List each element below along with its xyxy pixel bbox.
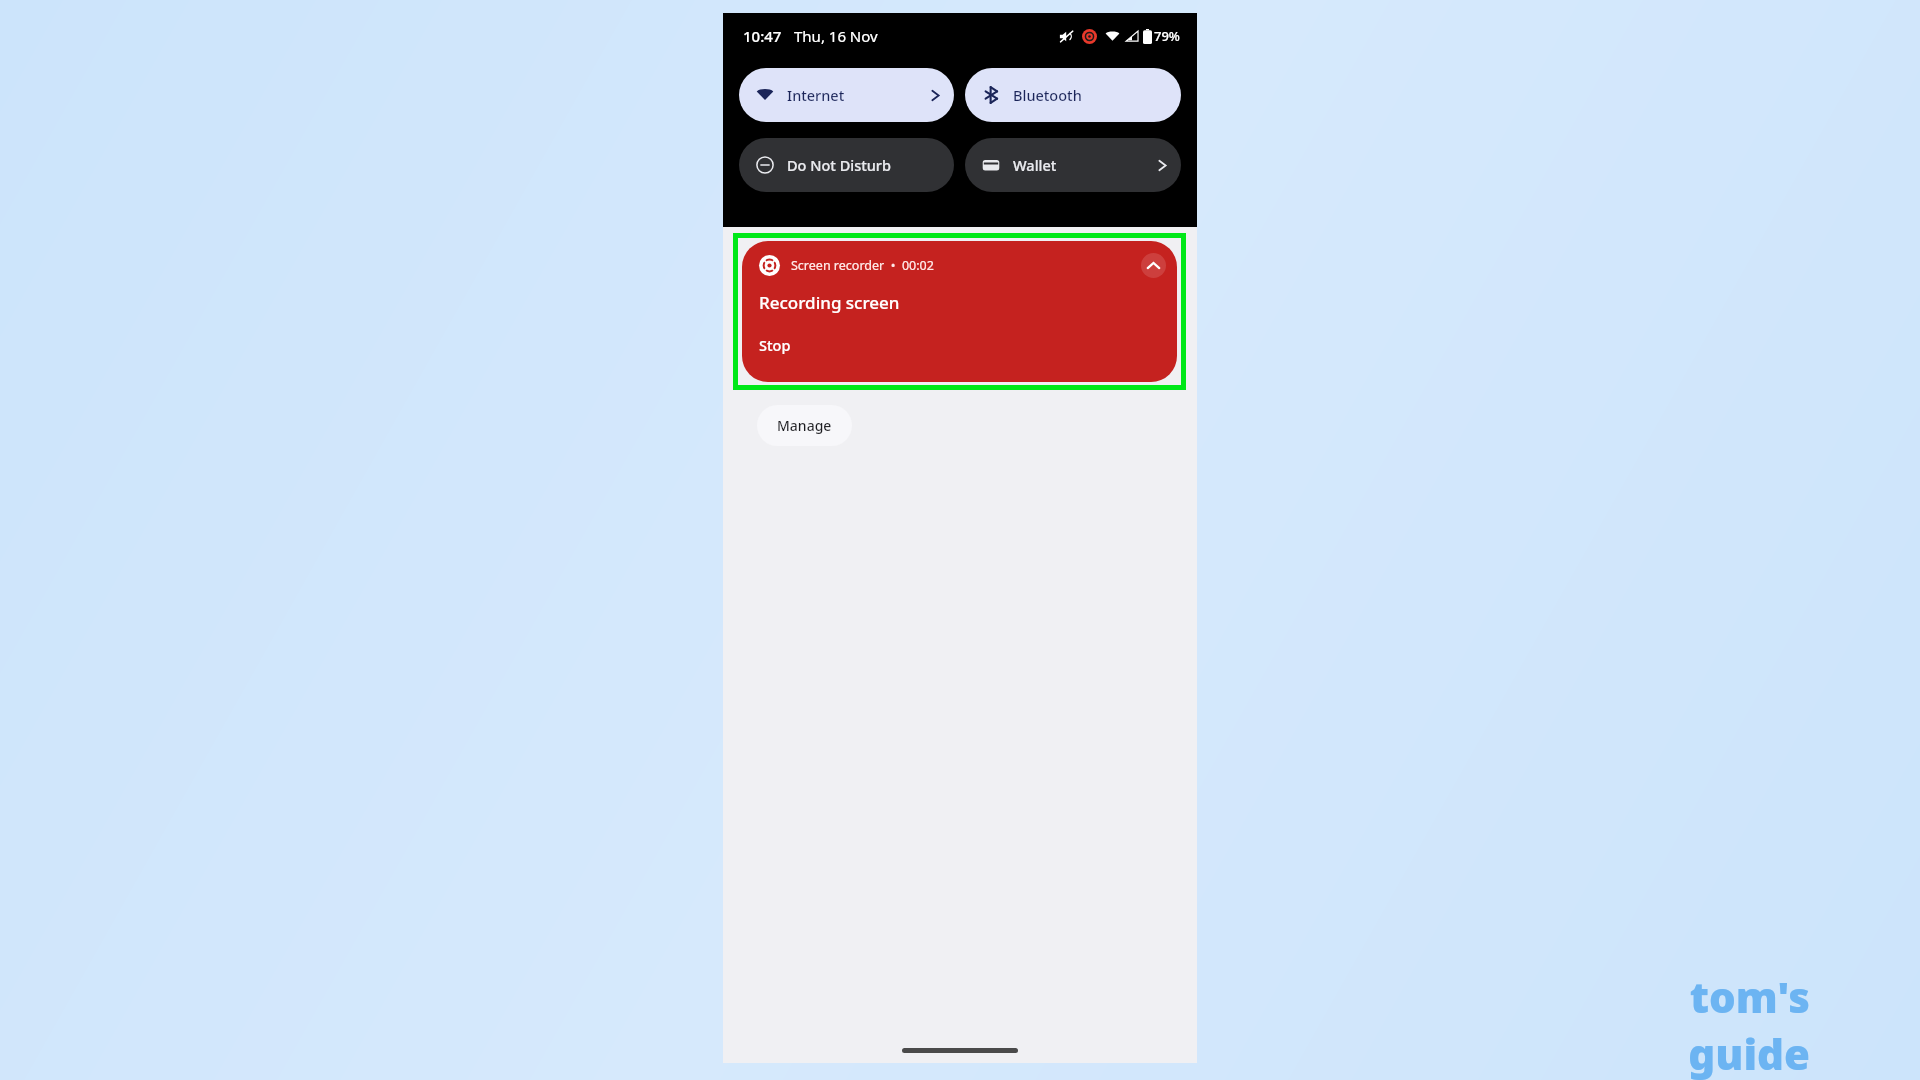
staticText: tom's [1689, 968, 1810, 1025]
staticText: Screen recorder • 00:02 [791, 257, 934, 274]
button[interactable]: Wallet [965, 138, 1181, 192]
button[interactable]: Do Not Disturb [739, 138, 954, 192]
staticText: Stop [759, 335, 791, 355]
button[interactable]: Manage [757, 405, 852, 446]
staticText: Recording screen [759, 291, 900, 314]
staticText: 10:47 [743, 26, 782, 46]
button[interactable]: Collapse notification [1141, 253, 1166, 278]
staticText: Thu, 16 Nov [794, 26, 878, 46]
button[interactable]: Stop [759, 335, 791, 355]
staticText: 79% [1154, 27, 1180, 45]
staticText: Wallet [1013, 155, 1057, 175]
button[interactable]: Internet [739, 68, 954, 122]
staticText: Bluetooth [1013, 85, 1082, 105]
staticText: Do Not Disturb [787, 155, 891, 175]
button[interactable]: Screen recorder • 00:02 [742, 241, 1177, 382]
staticText: guide [1688, 1025, 1810, 1080]
button[interactable]: Bluetooth [965, 68, 1181, 122]
staticText: Internet [787, 85, 845, 105]
staticText: Manage [777, 416, 832, 435]
